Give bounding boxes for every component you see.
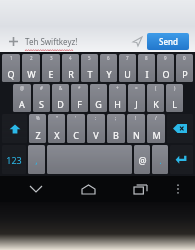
staticText: Teh Swiftkeyz! — [25, 36, 78, 47]
staticText: ; — [115, 115, 117, 121]
button[interactable]: Location — [129, 33, 145, 49]
staticText: Y — [106, 68, 112, 80]
staticText: 123 — [6, 154, 22, 166]
button[interactable]: 5 — [81, 54, 98, 82]
button[interactable]: ( — [147, 84, 164, 112]
button[interactable] — [2, 114, 27, 143]
staticText: R — [68, 68, 74, 80]
staticText: K — [153, 98, 159, 110]
staticText: @ — [138, 154, 147, 166]
button[interactable]: 2 — [22, 54, 40, 82]
staticText: / — [155, 115, 157, 121]
staticText: Send — [159, 36, 178, 47]
staticText: = — [135, 85, 138, 91]
staticText: ' — [75, 115, 77, 121]
button[interactable]: , — [28, 145, 45, 174]
staticText: 8 — [145, 55, 148, 61]
staticText: Z — [35, 129, 41, 141]
staticText: B — [113, 129, 119, 141]
button[interactable]: = — [128, 84, 145, 112]
staticText: , — [35, 154, 38, 166]
staticText: F — [77, 98, 82, 110]
staticText: & — [59, 85, 63, 91]
staticText: 0 — [183, 55, 186, 61]
button[interactable] — [170, 145, 193, 174]
button[interactable]: 0 — [176, 54, 193, 82]
button[interactable]: 4 — [62, 54, 79, 82]
staticText: ( — [155, 85, 157, 91]
staticText: N — [133, 129, 140, 141]
staticText: O — [162, 68, 170, 80]
staticText: J — [135, 98, 138, 110]
staticText: E — [48, 68, 54, 80]
staticText: ) — [174, 85, 176, 91]
staticText: @ — [20, 85, 25, 91]
staticText: D — [57, 98, 64, 110]
button[interactable]: / — [147, 114, 165, 143]
button[interactable]: % — [29, 114, 46, 143]
staticText: M — [152, 129, 161, 141]
button[interactable]: 3 — [42, 54, 60, 82]
button[interactable]: * — [71, 84, 88, 112]
button[interactable]: + — [109, 84, 126, 112]
button[interactable]: Add attachment — [4, 32, 22, 50]
staticText: P — [182, 68, 188, 80]
staticText: X — [54, 129, 60, 141]
staticText: % — [36, 115, 40, 121]
staticText: C — [73, 129, 79, 141]
staticText: V — [93, 129, 99, 141]
staticText: W — [27, 68, 36, 80]
staticText: ! — [135, 115, 137, 121]
button[interactable]: # — [33, 84, 50, 112]
staticText: * — [78, 85, 81, 91]
staticText: 6 — [107, 55, 110, 61]
staticText: - — [98, 85, 100, 91]
staticText: 1 — [10, 55, 13, 61]
button[interactable]: @ — [134, 145, 150, 174]
button[interactable]: : — [87, 114, 105, 143]
button[interactable]: Teh Swiftkeyz! — [25, 30, 129, 52]
button[interactable]: More options — [169, 180, 187, 198]
button[interactable]: 8 — [138, 54, 155, 82]
button[interactable] — [47, 145, 132, 174]
button[interactable]: Send — [147, 33, 189, 50]
staticText: 7 — [126, 55, 129, 61]
staticText: I — [145, 68, 149, 80]
button[interactable]: Recent apps — [126, 176, 154, 202]
staticText: A — [19, 98, 25, 110]
button[interactable]: 7 — [119, 54, 136, 82]
button[interactable]: ) — [166, 84, 183, 112]
staticText: + — [116, 85, 119, 91]
staticText: 2 — [30, 55, 33, 61]
staticText: U — [124, 68, 131, 80]
button[interactable]: " — [48, 114, 65, 143]
button[interactable]: Home — [74, 176, 102, 202]
staticText: 9 — [164, 55, 167, 61]
staticText: 4 — [69, 55, 72, 61]
staticText: . — [159, 154, 162, 166]
staticText: 5 — [88, 55, 91, 61]
button[interactable]: 6 — [100, 54, 117, 82]
staticText: # — [40, 85, 43, 91]
staticText: T — [87, 68, 93, 80]
button[interactable]: 123 — [2, 145, 26, 174]
button[interactable]: . — [152, 145, 168, 174]
staticText: H — [114, 98, 121, 110]
staticText: " — [56, 115, 58, 121]
button[interactable]: @ — [13, 84, 31, 112]
button[interactable]: ! — [127, 114, 145, 143]
button[interactable]: 1 — [2, 54, 20, 82]
staticText: S — [39, 98, 44, 110]
button[interactable]: 9 — [157, 54, 174, 82]
button[interactable]: ' — [67, 114, 85, 143]
button[interactable]: & — [52, 84, 69, 112]
button[interactable]: - — [90, 84, 107, 112]
staticText: : — [95, 115, 97, 121]
button[interactable]: ; — [107, 114, 125, 143]
staticText: L — [172, 98, 177, 110]
button[interactable]: Hide keyboard — [22, 176, 50, 202]
staticText: 3 — [50, 55, 53, 61]
staticText: Q — [7, 68, 15, 80]
staticText: G — [95, 98, 102, 110]
button[interactable] — [167, 114, 193, 143]
